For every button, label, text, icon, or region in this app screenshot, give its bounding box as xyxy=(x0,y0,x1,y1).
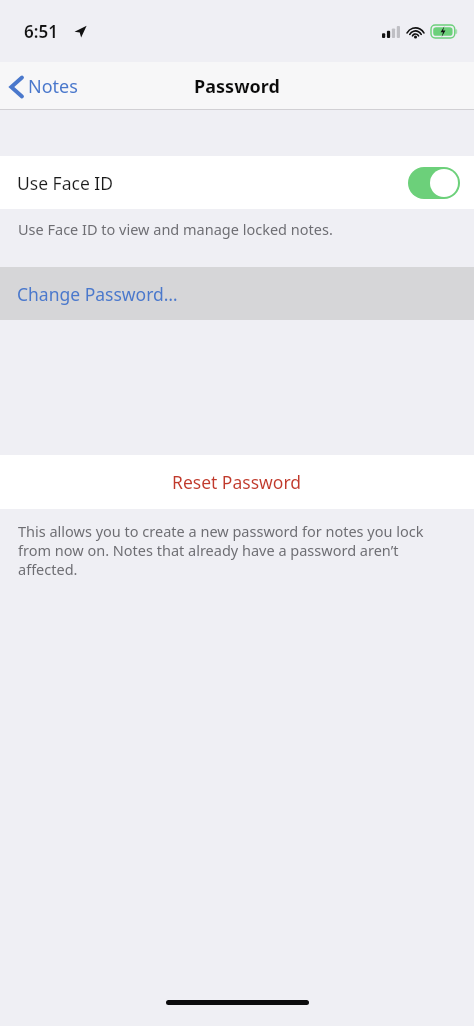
staticText: Change Password… xyxy=(17,282,178,306)
staticText: This allows you to create a new password… xyxy=(18,521,458,579)
staticText: 6:51 xyxy=(24,20,58,43)
staticText: Use Face ID to view and manage locked no… xyxy=(18,219,333,239)
staticText: Use Face ID xyxy=(17,171,114,195)
button[interactable]: Notes xyxy=(10,74,78,99)
button[interactable]: Reset Password xyxy=(0,455,474,509)
staticText: Reset Password xyxy=(172,470,302,494)
button[interactable]: Use Face ID xyxy=(0,156,474,209)
staticText: Notes xyxy=(28,74,78,99)
button[interactable]: Use Face ID toggle, on xyxy=(408,167,460,199)
button[interactable]: Change Password… xyxy=(0,267,474,320)
staticText: Password xyxy=(194,74,280,99)
